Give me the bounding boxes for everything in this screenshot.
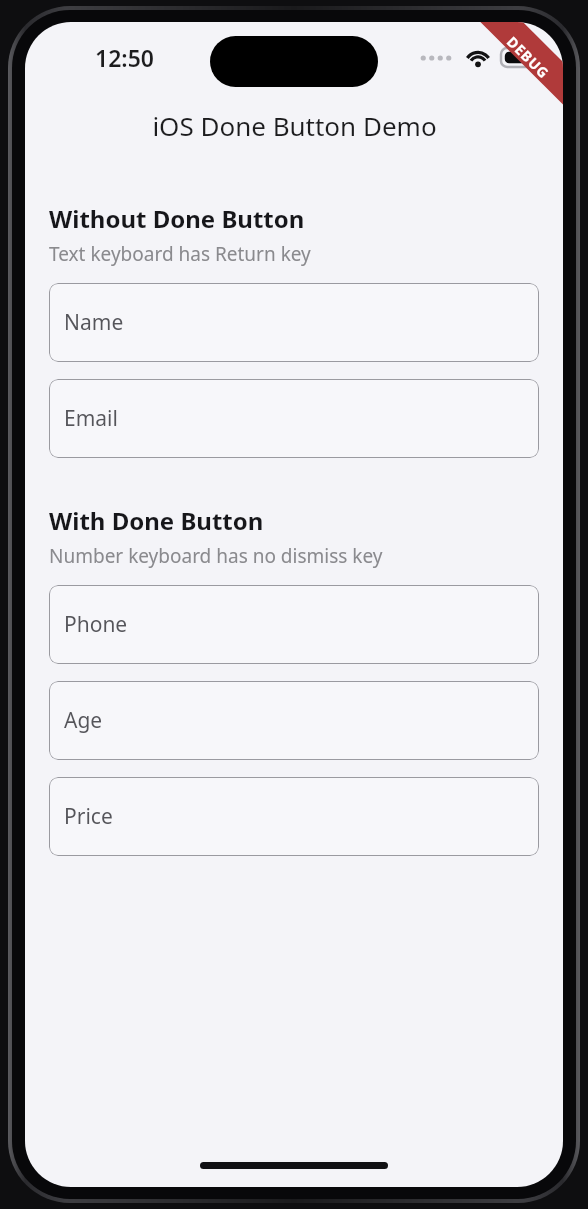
other: Wi-Fi xyxy=(465,48,491,67)
staticText: DEBUG xyxy=(503,32,554,83)
staticText: Phone xyxy=(64,610,128,639)
staticText: Name xyxy=(64,308,124,337)
staticText: Text keyboard has Return key xyxy=(49,241,311,267)
staticText: Price xyxy=(64,802,113,831)
button[interactable]: Phone xyxy=(49,585,539,664)
staticText: iOS Done Button Demo xyxy=(152,108,437,143)
button[interactable]: Name xyxy=(49,283,539,362)
other: Battery xyxy=(501,48,539,67)
staticText: Email xyxy=(64,404,118,433)
staticText: With Done Button xyxy=(49,504,264,537)
button[interactable]: Email xyxy=(49,379,539,458)
staticText: Number keyboard has no dismiss key xyxy=(49,543,383,569)
button[interactable]: Price xyxy=(49,777,539,856)
staticText: Without Done Button xyxy=(49,202,305,235)
staticText: Age xyxy=(64,706,103,735)
staticText: 12:50 xyxy=(95,42,154,73)
button[interactable]: Age xyxy=(49,681,539,760)
